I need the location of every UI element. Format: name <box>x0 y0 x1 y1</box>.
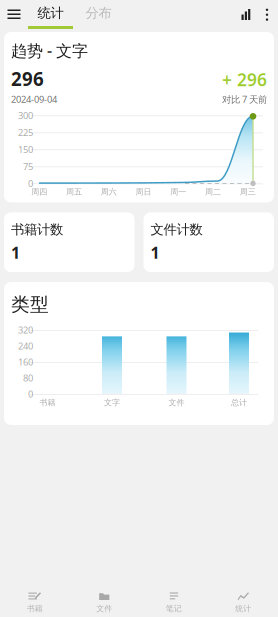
staticText: 2024-09-04 <box>11 93 57 105</box>
staticText: 150 <box>18 143 33 156</box>
button[interactable]: 笔记 <box>139 588 208 617</box>
button[interactable]: 统计 <box>208 588 278 617</box>
staticText: 周二 <box>205 187 221 197</box>
staticText: 1 <box>11 242 20 263</box>
staticText: 类型 <box>11 293 49 316</box>
staticText: 统计 <box>37 5 63 21</box>
staticText: 对比 7 天前 <box>222 93 267 105</box>
staticText: 分布 <box>85 5 111 21</box>
staticText: 0 <box>28 177 33 190</box>
staticText: 周三 <box>240 187 256 197</box>
staticText: 320 <box>18 324 33 336</box>
staticText: 文件计数 <box>150 221 202 238</box>
staticText: 周六 <box>101 187 117 197</box>
staticText: 300 <box>18 109 33 122</box>
staticText: 统计 <box>235 604 251 613</box>
staticText: 0 <box>28 388 33 400</box>
staticText: 75 <box>23 160 33 173</box>
button[interactable]: 文件 <box>69 588 139 617</box>
button[interactable]: Chart <box>234 0 258 29</box>
staticText: 296 <box>11 66 44 91</box>
staticText: 周五 <box>66 187 82 197</box>
staticText: 书籍 <box>27 604 43 613</box>
staticText: 周日 <box>135 187 151 197</box>
staticText: 文件 <box>168 398 184 407</box>
staticText: 周一 <box>170 187 186 197</box>
staticText: 80 <box>23 372 33 384</box>
button[interactable]: More <box>258 0 276 29</box>
staticText: 趋势 - 文字 <box>11 40 88 61</box>
staticText: 文件 <box>96 604 112 613</box>
staticText: 160 <box>18 356 33 368</box>
button[interactable]: 分布 <box>76 0 121 29</box>
button[interactable]: Menu <box>2 0 26 29</box>
staticText: 1 <box>150 242 159 263</box>
staticText: 书籍计数 <box>11 221 63 238</box>
staticText: 周四 <box>31 187 47 197</box>
button[interactable]: 书籍 <box>0 588 69 617</box>
button[interactable]: 统计 <box>28 0 73 29</box>
staticText: 225 <box>18 126 33 139</box>
staticText: 笔记 <box>166 604 182 613</box>
staticText: + 296 <box>222 68 267 91</box>
staticText: 240 <box>18 340 33 352</box>
staticText: 总计 <box>231 398 247 407</box>
staticText: 文字 <box>104 398 120 407</box>
staticText: 书籍 <box>39 398 55 407</box>
